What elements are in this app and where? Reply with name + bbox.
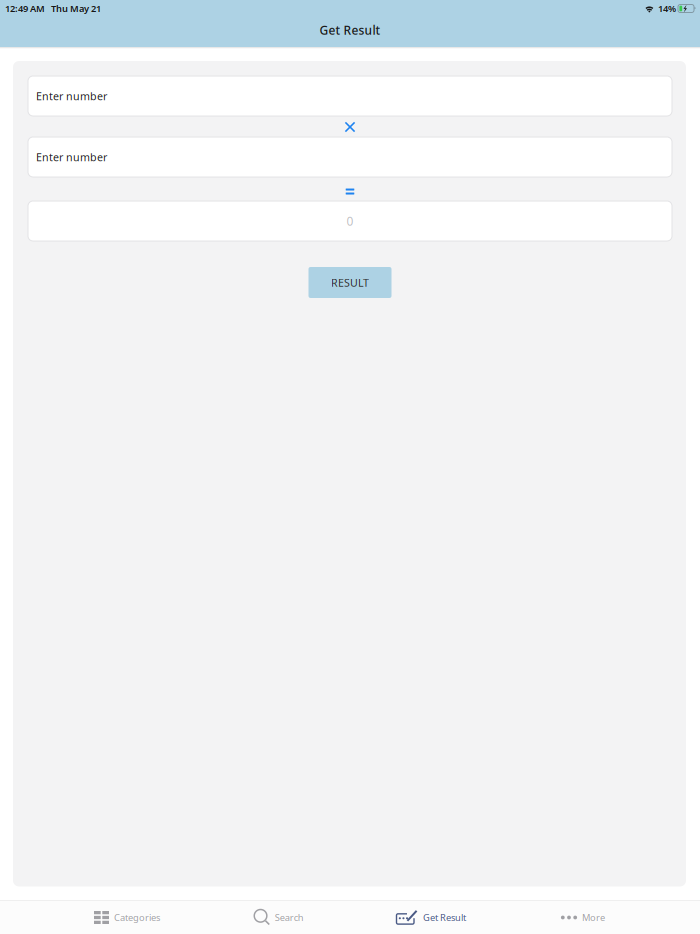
staticText: Get Result [423, 911, 466, 924]
staticText: Categories [114, 911, 160, 924]
staticText: 14% [658, 2, 676, 15]
button[interactable]: More [507, 901, 659, 934]
staticText: 12:49 AM [5, 2, 45, 15]
staticText: Enter number [36, 150, 107, 164]
staticText: More [582, 911, 605, 924]
button[interactable]: RESULT [308, 267, 391, 298]
staticText: Get Result [319, 22, 380, 38]
staticText: 0 [346, 213, 353, 229]
staticText: RESULT [331, 275, 369, 290]
button[interactable]: Search [203, 901, 355, 934]
button[interactable]: Get Result [355, 901, 507, 934]
button[interactable]: Categories [51, 901, 203, 934]
staticText: Enter number [36, 89, 107, 103]
staticText: Search [275, 911, 304, 924]
staticText: Thu May 21 [51, 2, 101, 15]
